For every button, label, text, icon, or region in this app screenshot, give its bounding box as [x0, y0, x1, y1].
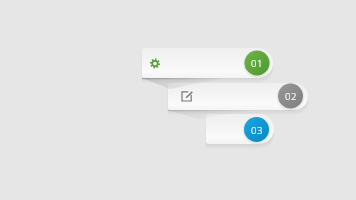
button[interactable]: Step 02 edit	[168, 83, 308, 110]
staticText: 01	[251, 57, 263, 70]
staticText: 02	[285, 90, 297, 103]
button[interactable]: Step 03	[206, 114, 274, 144]
button[interactable]: Step 01 settings	[142, 48, 273, 78]
staticText: 03	[251, 124, 263, 137]
